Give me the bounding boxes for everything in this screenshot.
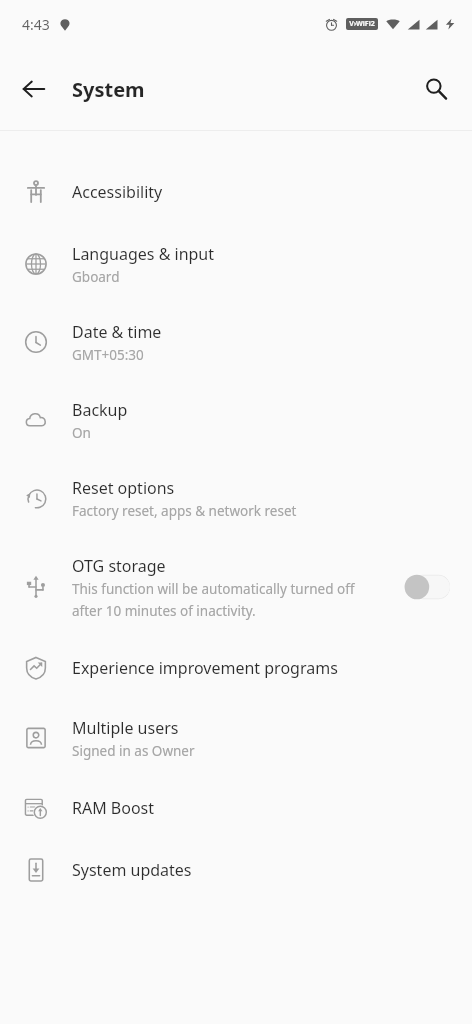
staticText: Experience improvement programs — [72, 657, 338, 679]
button[interactable]: Back — [14, 69, 54, 109]
button[interactable]: OTG storage toggle — [404, 573, 450, 601]
staticText: Reset options — [72, 477, 175, 499]
button[interactable]: System updates — [0, 838, 472, 901]
button[interactable]: OTG storage — [0, 537, 472, 637]
staticText: System — [72, 76, 145, 103]
staticText: Factory reset, apps & network reset — [72, 502, 297, 520]
staticText: Languages & input — [72, 243, 215, 265]
staticText: Date & time — [72, 321, 162, 343]
button[interactable]: Reset options — [0, 459, 472, 537]
button[interactable]: Date & time — [0, 303, 472, 381]
staticText: This function will be automatically turn… — [72, 580, 355, 598]
button[interactable]: Search — [414, 67, 458, 111]
staticText: System updates — [72, 859, 192, 881]
button[interactable]: Languages & input — [0, 225, 472, 303]
staticText: GMT+05:30 — [72, 346, 144, 364]
staticText: V›WiFi2 — [349, 19, 375, 29]
button[interactable]: RAM Boost — [0, 778, 472, 838]
staticText: 4:43 — [22, 15, 50, 34]
button[interactable]: Multiple users — [0, 698, 472, 778]
staticText: Signed in as Owner — [72, 742, 195, 760]
staticText: Accessibility — [72, 181, 163, 203]
staticText: OTG storage — [72, 555, 166, 577]
button[interactable]: Backup — [0, 381, 472, 459]
staticText: Gboard — [72, 268, 120, 286]
staticText: On — [72, 424, 91, 442]
staticText: after 10 minutes of inactivity. — [72, 602, 256, 620]
staticText: Multiple users — [72, 717, 179, 739]
button[interactable]: Accessibility — [0, 159, 472, 225]
button[interactable]: Experience improvement programs — [0, 637, 472, 698]
staticText: Backup — [72, 399, 128, 421]
staticText: RAM Boost — [72, 797, 155, 819]
